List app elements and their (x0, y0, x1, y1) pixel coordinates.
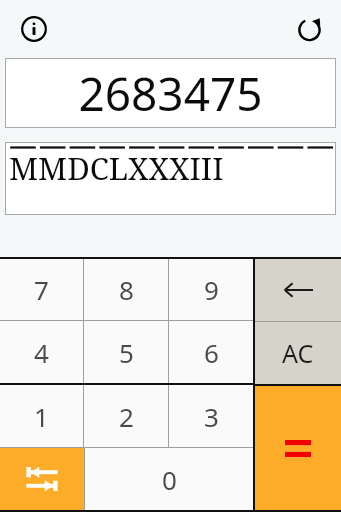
button[interactable]: Info (14, 9, 54, 49)
button[interactable]: 4 (0, 321, 83, 383)
button[interactable]: 8 (84, 259, 168, 320)
staticText: AC (282, 336, 314, 370)
button[interactable]: 0 (85, 448, 253, 510)
button[interactable]: 2 (84, 385, 168, 447)
button[interactable]: 6 (169, 321, 253, 383)
staticText: 1 (34, 399, 49, 434)
staticText: MMDCLXXXIII (9, 147, 224, 189)
button[interactable]: Swap (0, 448, 84, 510)
staticText: 6 (204, 335, 219, 370)
button[interactable]: 9 (169, 259, 253, 320)
button[interactable]: 5 (84, 321, 168, 383)
button[interactable]: AC (255, 322, 341, 384)
button[interactable]: 1 (0, 385, 83, 447)
button[interactable]: Backspace (255, 259, 341, 321)
button[interactable]: 7 (0, 259, 83, 320)
staticText: 2 (119, 399, 134, 434)
staticText: 3 (204, 399, 219, 434)
staticText: 0 (162, 462, 177, 497)
staticText: 5 (119, 335, 134, 370)
staticText: 2683475 (78, 62, 263, 125)
staticText: 7 (34, 272, 49, 307)
staticText: 8 (119, 272, 134, 307)
button[interactable]: Equals (255, 386, 341, 510)
button[interactable]: 3 (169, 385, 253, 447)
button[interactable]: Reset (289, 9, 329, 49)
staticText: 4 (34, 335, 49, 370)
staticText: 9 (204, 272, 219, 307)
